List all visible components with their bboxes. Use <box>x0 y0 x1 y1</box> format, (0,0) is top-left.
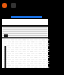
button[interactable]: Menu <box>11 3 16 8</box>
button[interactable]: App icon <box>2 3 7 8</box>
